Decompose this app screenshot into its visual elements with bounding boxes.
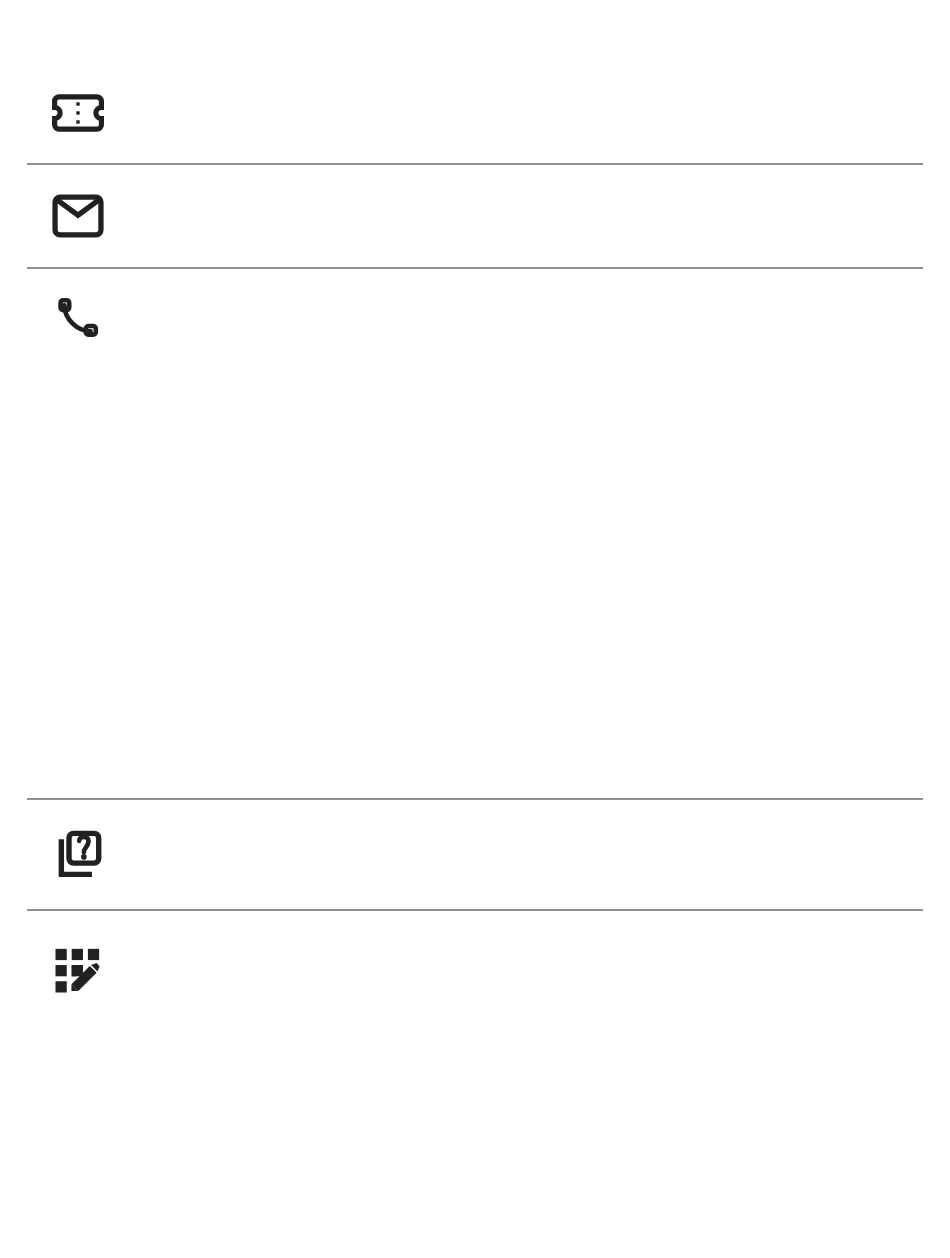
button[interactable]: Email <box>0 165 950 267</box>
button[interactable]: Call <box>0 269 950 798</box>
button[interactable]: Help <box>0 800 950 909</box>
button[interactable]: Edit apps <box>0 911 950 1029</box>
button[interactable]: Tickets <box>0 0 950 163</box>
